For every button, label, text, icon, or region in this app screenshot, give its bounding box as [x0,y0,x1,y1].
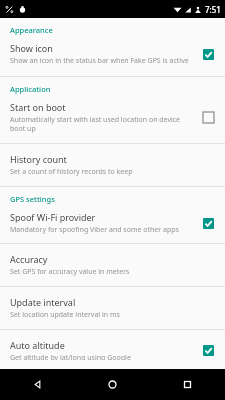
button[interactable]: Spoof Wi-Fi provider [0,207,225,243]
button[interactable]: History count [0,144,225,186]
staticText: GPS settings [10,194,55,204]
staticText: Mandatory for spoofing Viber and some ot… [10,225,179,235]
button[interactable]: Checkbox [199,108,217,126]
other: Checkbox [202,111,215,124]
staticText: Show an icon in the status bar when Fake… [10,56,189,66]
staticText: Application [10,84,51,94]
staticText: Set a count of history records to keep [10,167,133,177]
staticText: Auto altitude [10,339,65,351]
staticText: History count [10,153,67,165]
staticText: Set GPS for accuracy value in meters [10,267,130,277]
staticText: Show icon [10,42,53,54]
other: Checkbox [202,344,215,357]
button[interactable]: Back [0,369,75,400]
staticText: Accuracy [10,253,48,265]
staticText: 7:51 [205,4,221,15]
button[interactable]: Home [75,369,150,400]
staticText: Get altitude by lat/long using Google [10,353,131,360]
button[interactable]: Checkbox [199,45,217,63]
staticText: Set location update interval in ms [10,310,120,320]
button[interactable]: Recent apps [150,369,225,400]
button[interactable]: Update interval [0,287,225,329]
staticText: Start on boot [10,101,66,113]
staticText: Update interval [10,296,76,308]
button[interactable]: Start on boot [0,97,225,143]
button[interactable]: Show icon [0,38,225,76]
staticText: Appearance [10,25,53,35]
button[interactable]: Checkbox [199,341,217,359]
button[interactable]: Accuracy [0,244,225,286]
button[interactable]: Auto altitude [0,330,225,369]
other: Checkbox [202,48,215,61]
other: Checkbox [202,217,215,230]
staticText: Automatically start with last used locat… [10,115,191,133]
button[interactable]: Checkbox [199,214,217,232]
staticText: Spoof Wi-Fi provider [10,211,96,223]
